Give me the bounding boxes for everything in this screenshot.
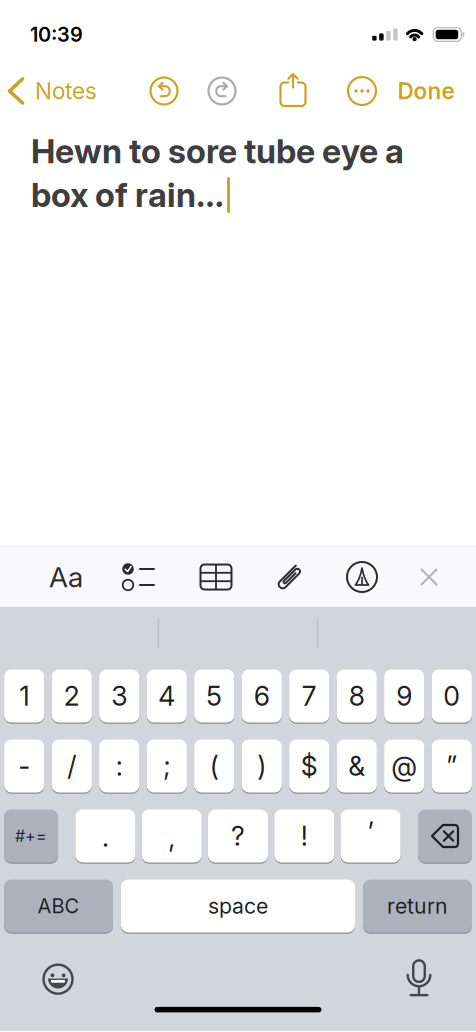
button[interactable]: Dismiss [421, 569, 436, 584]
button[interactable]: Attach [275, 562, 305, 592]
staticText: ABC [37, 894, 79, 918]
staticText: @ [391, 750, 417, 782]
staticText: 7 [302, 680, 317, 712]
staticText: 3 [111, 680, 127, 712]
staticText: ? [231, 820, 245, 852]
staticText: 2 [64, 680, 80, 712]
button[interactable]: , [142, 809, 202, 863]
staticText: 8 [349, 680, 365, 712]
button[interactable]: More [348, 77, 376, 105]
button[interactable]: ” [432, 739, 472, 793]
staticText: $ [301, 750, 318, 782]
button[interactable]: Delete [418, 809, 472, 863]
staticText: 5 [206, 680, 222, 712]
button[interactable]: @ [384, 739, 424, 793]
staticText: 0 [443, 680, 460, 712]
button[interactable]: 0 [432, 669, 472, 723]
button[interactable]: ! [274, 809, 334, 863]
button[interactable]: ( [194, 739, 234, 793]
button[interactable]: ’ [341, 809, 401, 863]
button[interactable]: 8 [337, 669, 377, 723]
button[interactable]: 7 [289, 669, 329, 723]
button[interactable]: 2 [52, 669, 92, 723]
button[interactable]: Back to Notes [0, 71, 104, 111]
staticText: 10:39 [30, 23, 83, 46]
button[interactable]: $ [289, 739, 329, 793]
button[interactable]: Share [280, 74, 305, 106]
staticText: Hewn to sore tube eye a [31, 131, 404, 171]
staticText: ; [163, 750, 170, 782]
button[interactable]: Format [49, 560, 83, 593]
staticText: Done [397, 78, 454, 104]
staticText: box of rain… [31, 175, 224, 215]
button[interactable]: Done [397, 78, 454, 104]
button[interactable]: space [121, 879, 355, 933]
staticText: 4 [158, 680, 175, 712]
button[interactable]: 3 [99, 669, 139, 723]
staticText: Aa [49, 560, 83, 593]
button[interactable]: / [52, 739, 92, 793]
staticText: ( [210, 750, 219, 782]
button[interactable]: 5 [194, 669, 234, 723]
staticText: ! [301, 820, 308, 852]
staticText: - [18, 750, 30, 782]
button[interactable]: ; [147, 739, 187, 793]
button[interactable]: Redo [208, 77, 235, 104]
staticText: . [102, 821, 109, 853]
button[interactable]: #+= [4, 809, 58, 863]
staticText: & [348, 750, 365, 782]
button[interactable]: return [363, 879, 472, 933]
button[interactable]: Emoji [43, 965, 72, 994]
button[interactable]: . [75, 809, 135, 863]
button[interactable]: : [99, 739, 139, 793]
staticText: ” [446, 750, 457, 782]
button[interactable]: 6 [242, 669, 282, 723]
button[interactable]: - [4, 739, 44, 793]
staticText: 1 [19, 680, 29, 712]
staticText: ’ [368, 816, 374, 848]
button[interactable]: ) [242, 739, 282, 793]
button[interactable]: Undo [150, 77, 177, 104]
staticText: return [387, 893, 448, 919]
button[interactable]: & [337, 739, 377, 793]
button[interactable]: ? [208, 809, 268, 863]
button[interactable]: ABC [4, 879, 113, 933]
button[interactable]: Dictate [405, 961, 433, 997]
staticText: space [208, 893, 268, 919]
staticText: 6 [254, 680, 270, 712]
staticText: : [116, 750, 123, 782]
button[interactable]: 9 [384, 669, 424, 723]
staticText: Notes [35, 78, 97, 104]
staticText: #+= [15, 827, 47, 845]
staticText: 9 [396, 680, 412, 712]
button[interactable]: Table [200, 564, 231, 589]
button[interactable]: Markup [347, 562, 377, 592]
button[interactable]: 4 [147, 669, 187, 723]
staticText: ) [257, 750, 266, 782]
button[interactable]: 1 [4, 669, 44, 723]
button[interactable]: Checklist [120, 562, 158, 592]
staticText: , [168, 822, 175, 854]
staticText: / [67, 750, 76, 782]
